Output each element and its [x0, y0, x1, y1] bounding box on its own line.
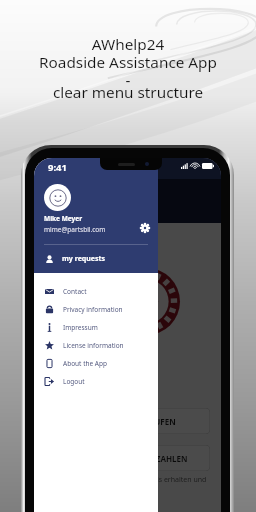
- button[interactable]: my requests: [34, 248, 158, 270]
- staticText: AWhelp24: [0, 34, 256, 55]
- staticText: clear menu structure: [0, 82, 256, 103]
- staticText: License information: [63, 341, 124, 350]
- button[interactable]: Logout: [34, 372, 158, 390]
- staticText: Preis erhalten und: [146, 475, 207, 485]
- button[interactable]: Contact: [34, 282, 158, 300]
- button[interactable]: Impressum: [34, 318, 158, 336]
- staticText: mime@partsbil.com: [44, 225, 106, 234]
- staticText: Privacy information: [63, 305, 123, 314]
- button[interactable]: BEZAHLEN: [43, 445, 210, 471]
- staticText: About the App: [63, 359, 108, 368]
- staticText: Funktion: [118, 195, 159, 207]
- button[interactable]: Settings: [140, 223, 150, 233]
- button[interactable]: About the App: [34, 354, 158, 372]
- button[interactable]: ANRUFEN: [43, 408, 210, 434]
- staticText: Mike Meyer: [44, 214, 83, 223]
- staticText: Roadside Assistance App: [0, 52, 256, 73]
- button[interactable]: License information: [34, 336, 158, 354]
- staticText: my requests: [62, 254, 106, 264]
- staticText: Impressum: [63, 323, 98, 332]
- staticText: BEZAHLEN: [146, 453, 188, 464]
- staticText: Logout: [63, 377, 85, 386]
- staticText: -: [0, 70, 256, 91]
- staticText: 9:41: [48, 161, 67, 174]
- staticText: Contact: [63, 287, 87, 296]
- button[interactable]: Privacy information: [34, 300, 158, 318]
- staticText: ANRUFEN: [137, 416, 176, 427]
